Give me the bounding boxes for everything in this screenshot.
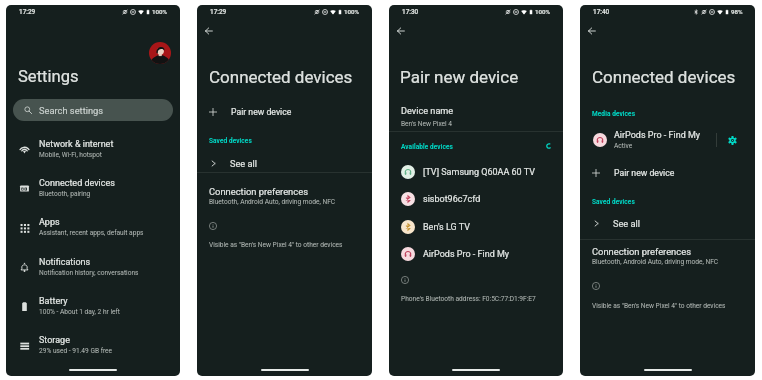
- button[interactable]: AirPods Pro - Find My: [389, 243, 563, 265]
- staticText: Bluetooth, pairing: [39, 190, 91, 198]
- staticText: AirPods Pro - Find My: [423, 249, 510, 260]
- staticText: Search settings: [39, 105, 104, 116]
- button[interactable]: Search settings: [13, 99, 173, 121]
- staticText: Bluetooth, Android Auto, driving mode, N…: [592, 258, 719, 266]
- staticText: Connection preferences: [592, 246, 691, 257]
- staticText: Ben's LG TV: [423, 222, 470, 233]
- staticText: sisbot96c7cfd: [423, 194, 481, 205]
- button[interactable]: AirPods Pro - Find My: [580, 127, 755, 152]
- staticText: Pair new device: [400, 67, 519, 87]
- staticText: 100%: [535, 8, 551, 15]
- staticText: Notification history, conversations: [39, 269, 139, 277]
- staticText: 17:29: [19, 8, 36, 16]
- button[interactable]: Back: [200, 22, 218, 40]
- staticText: Saved devices: [209, 137, 252, 145]
- staticText: Connected devices: [209, 67, 353, 87]
- staticText: Connection preferences: [209, 186, 308, 197]
- staticText: Notifications: [39, 257, 91, 268]
- staticText: 100%: [152, 8, 168, 15]
- staticText: Connected devices: [592, 67, 736, 87]
- staticText: Saved devices: [592, 198, 635, 206]
- staticText: Phone's Bluetooth address: F0:5C:77:D1:9…: [401, 295, 536, 303]
- button[interactable]: See all: [580, 212, 755, 234]
- button[interactable]: Pair new device: [580, 162, 755, 184]
- staticText: Settings: [18, 67, 79, 86]
- staticText: Visible as "Ben's New Pixel 4" to other …: [592, 302, 726, 310]
- button[interactable]: Back: [583, 22, 601, 40]
- staticText: Pair new device: [231, 107, 292, 117]
- staticText: Pair new device: [614, 168, 675, 178]
- button[interactable]: Battery: [6, 289, 180, 323]
- button[interactable]: Connected devices: [6, 171, 180, 205]
- button[interactable]: See all: [197, 152, 372, 174]
- button[interactable]: Device settings: [723, 131, 742, 150]
- staticText: 17:30: [402, 8, 419, 16]
- staticText: [TV] Samsung Q60AA 60 TV: [423, 167, 535, 178]
- staticText: 98%: [731, 8, 743, 15]
- staticText: Media devices: [592, 110, 636, 118]
- staticText: Mobile, Wi-Fi, hotspot: [39, 151, 102, 159]
- button[interactable]: Pair new device: [197, 101, 372, 123]
- staticText: Ben's New Pixel 4: [401, 120, 453, 128]
- staticText: Bluetooth, Android Auto, driving mode, N…: [209, 198, 336, 206]
- staticText: Storage: [39, 335, 70, 346]
- button[interactable]: Ben's LG TV: [389, 216, 563, 238]
- staticText: Available devices: [401, 143, 453, 151]
- staticText: 29% used - 91.49 GB free: [39, 347, 113, 355]
- staticText: 100% - About 1 day, 2 hr left: [39, 308, 120, 316]
- button[interactable]: Storage: [6, 328, 180, 362]
- staticText: Assistant, recent apps, default apps: [39, 229, 144, 237]
- button[interactable]: Apps: [6, 210, 180, 244]
- button[interactable]: [TV] Samsung Q60AA 60 TV: [389, 161, 563, 183]
- staticText: 100%: [344, 8, 360, 15]
- button[interactable]: Network & internet: [6, 132, 180, 166]
- staticText: See all: [230, 158, 257, 169]
- button[interactable]: Notifications: [6, 250, 180, 284]
- staticText: Apps: [39, 217, 60, 228]
- button[interactable]: sisbot96c7cfd: [389, 188, 563, 210]
- staticText: AirPods Pro - Find My: [614, 130, 701, 141]
- staticText: Connected devices: [39, 178, 115, 189]
- button[interactable]: Back: [392, 22, 410, 40]
- staticText: Network & internet: [39, 139, 114, 150]
- staticText: 17:40: [593, 8, 610, 16]
- staticText: Active: [614, 142, 633, 150]
- staticText: Visible as "Ben's New Pixel 4" to other …: [209, 241, 343, 249]
- staticText: Device name: [401, 106, 454, 117]
- staticText: 17:29: [210, 8, 227, 16]
- staticText: Battery: [39, 296, 68, 307]
- staticText: See all: [613, 218, 640, 229]
- button[interactable]: Account: [149, 42, 171, 64]
